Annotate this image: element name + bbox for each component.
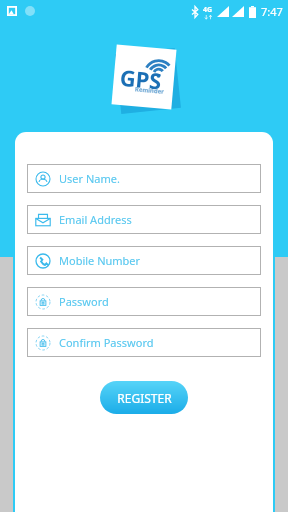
staticText: Password: [59, 294, 109, 309]
button[interactable]: Mobile field: [27, 246, 261, 275]
staticText: Confirm Password: [59, 335, 154, 350]
other: Screenshot saved: [7, 6, 17, 16]
staticText: REGISTER: [117, 390, 172, 406]
button[interactable]: Password field: [27, 287, 261, 316]
other: Notification: [25, 6, 35, 16]
button[interactable]: Email field: [27, 205, 261, 234]
staticText: GPS: [119, 62, 163, 95]
staticText: 4G: [203, 5, 213, 15]
button[interactable]: REGISTER: [100, 381, 188, 414]
staticText: User Name.: [59, 171, 120, 186]
staticText: Reminder: [134, 85, 165, 96]
staticText: Mobile Number: [59, 253, 141, 268]
staticText: Email Address: [59, 212, 132, 227]
staticText: 7:47: [261, 4, 283, 19]
button[interactable]: User name field: [27, 164, 261, 193]
button[interactable]: Confirm field: [27, 328, 261, 357]
